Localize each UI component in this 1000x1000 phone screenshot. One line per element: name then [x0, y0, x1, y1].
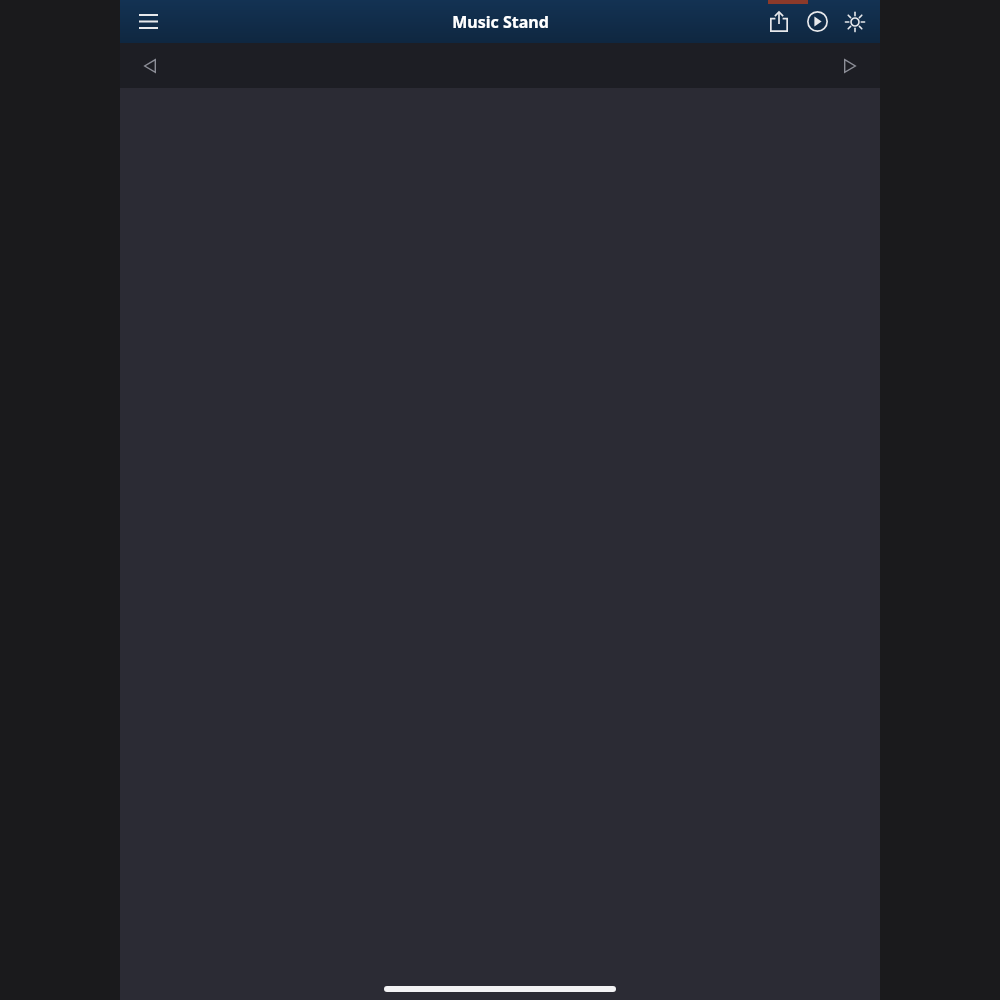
button[interactable]: Share — [760, 0, 798, 43]
button[interactable]: Play — [798, 0, 836, 43]
button[interactable]: Next page — [828, 43, 872, 88]
button[interactable]: Brightness — [836, 0, 874, 43]
staticText: Music Stand — [452, 11, 549, 33]
button[interactable]: Previous page — [128, 43, 172, 88]
button[interactable]: Menu — [126, 0, 170, 43]
